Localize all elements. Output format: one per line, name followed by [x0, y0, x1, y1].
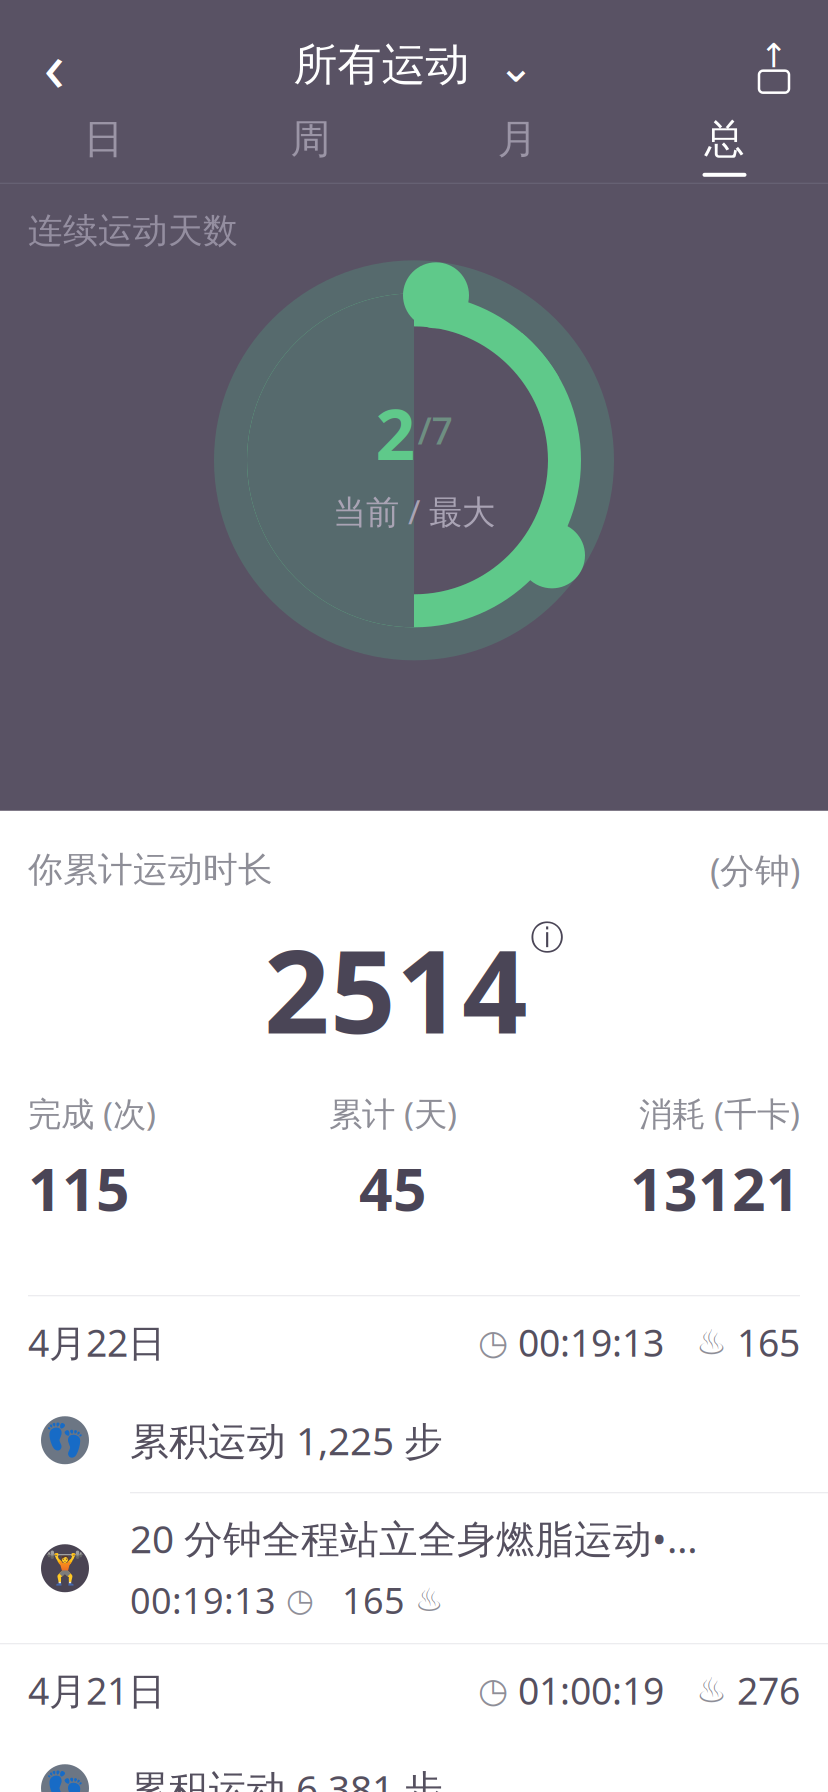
button[interactable]: 总 — [621, 109, 828, 183]
staticText: ‹ — [43, 19, 64, 111]
staticText: 累计 (天) — [329, 1091, 457, 1135]
staticText: 115 — [28, 1149, 130, 1227]
staticText: 周 — [290, 115, 330, 164]
staticText: 👣 — [45, 1422, 85, 1459]
staticText: 45 — [359, 1149, 427, 1227]
staticText: 20 分钟全程站立全身燃脂运动•… — [130, 1513, 698, 1564]
button[interactable]: 月 — [414, 109, 621, 183]
staticText: 所有运动 ⌄ — [293, 38, 534, 92]
staticText: 165 — [342, 1576, 405, 1624]
staticText: 00:19:13 — [518, 1317, 664, 1367]
staticText: ♨ — [696, 1671, 727, 1710]
staticText: /7 — [417, 405, 452, 455]
staticText: ♨ — [415, 1582, 444, 1618]
staticText: 累积运动 1,225 步 — [130, 1415, 443, 1466]
staticText: 2 — [375, 387, 415, 479]
staticText: ◷ — [478, 1671, 508, 1710]
staticText: ⓘ — [530, 917, 563, 958]
staticText: 276 — [737, 1665, 800, 1715]
staticText: 13121 — [630, 1149, 800, 1227]
staticText: ◷ — [478, 1323, 508, 1362]
staticText: (分钟) — [710, 847, 800, 893]
staticText: 连续运动天数 — [28, 210, 238, 252]
button[interactable]: 周 — [207, 109, 414, 183]
staticText: 🏋 — [45, 1550, 85, 1587]
staticText: 总 — [704, 115, 744, 164]
staticText: 完成 (次) — [28, 1091, 156, 1135]
staticText: 4月22日 — [28, 1317, 165, 1367]
button[interactable]: 👣 — [0, 1388, 828, 1493]
staticText: ◷ — [286, 1582, 314, 1618]
staticText: 01:00:19 — [518, 1665, 664, 1715]
staticText: ↑ — [760, 37, 788, 75]
staticText: ♨ — [696, 1323, 727, 1362]
staticText: 165 — [737, 1317, 800, 1367]
staticText: 4月21日 — [28, 1665, 165, 1715]
button[interactable]: Back — [18, 29, 90, 101]
button[interactable]: 🏋 — [0, 1493, 828, 1644]
staticText: 00:19:13 — [130, 1576, 276, 1624]
staticText: 月 — [497, 115, 537, 164]
staticText: 你累计运动时长 — [28, 848, 273, 891]
staticText: 当前 / 最大 — [333, 489, 495, 533]
staticText: 日 — [83, 115, 123, 164]
button[interactable]: Share — [738, 29, 810, 101]
staticText: 2514 — [264, 913, 528, 1065]
staticText: 👣 — [45, 1770, 85, 1792]
staticText: 消耗 (千卡) — [639, 1091, 800, 1135]
button[interactable]: 日 — [0, 109, 207, 183]
button[interactable]: About total minutes — [530, 913, 564, 955]
button[interactable]: 👣 — [0, 1736, 828, 1792]
staticText: 累积运动 6,381 步 — [130, 1763, 443, 1792]
